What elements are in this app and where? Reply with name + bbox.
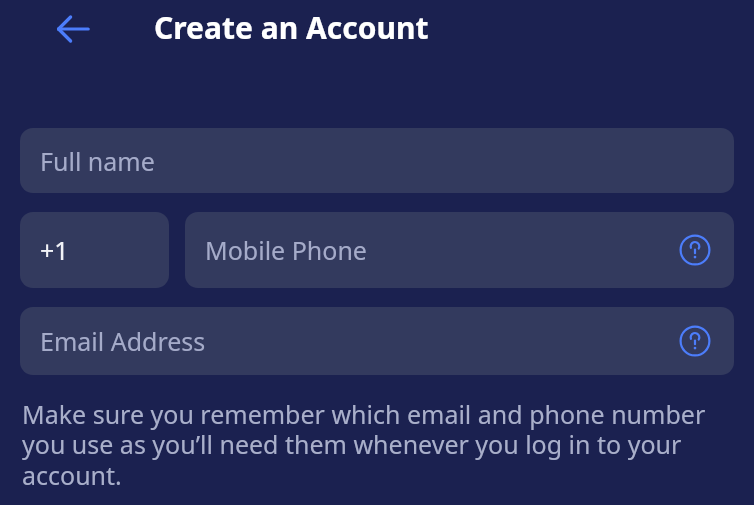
staticText: Mobile Phone (205, 233, 367, 267)
staticText: Make sure you remember which email and p… (22, 397, 736, 493)
button[interactable]: +1 (20, 212, 169, 288)
button[interactable]: Email address help (678, 324, 712, 358)
button[interactable]: Mobile Phone (185, 212, 734, 288)
staticText: Full name (40, 144, 155, 178)
button[interactable]: Email Address (20, 307, 734, 375)
button[interactable]: Back (47, 3, 99, 55)
button[interactable]: Full name (20, 128, 734, 193)
button[interactable]: Phone number help (678, 233, 712, 267)
staticText: +1 (40, 233, 69, 267)
staticText: Email Address (40, 324, 206, 358)
staticText: Create an Account (154, 7, 429, 48)
